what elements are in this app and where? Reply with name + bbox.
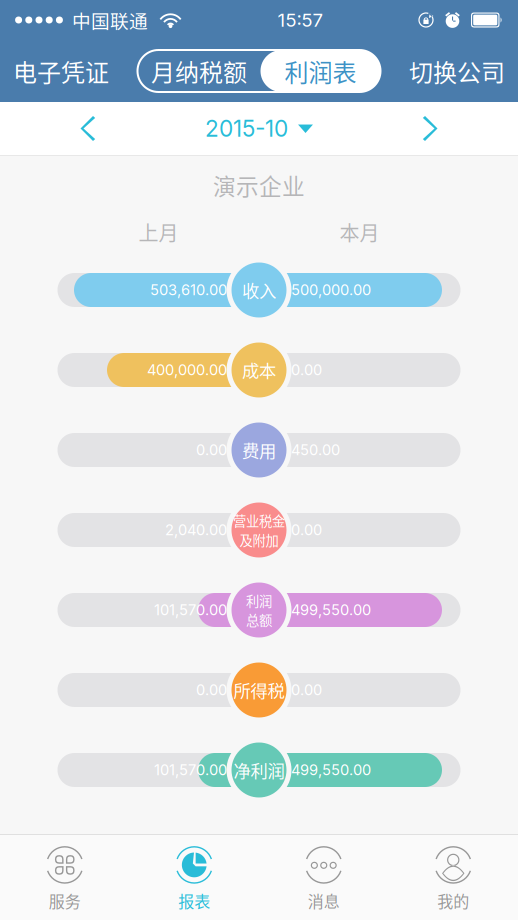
staticText: 营业税金 [233,511,285,530]
button[interactable]: 报表 [129,835,259,920]
staticText: 服务 [49,889,81,912]
staticText: 收入 [242,277,276,303]
button[interactable]: Previous month [50,102,124,155]
staticText: 499,550.00 [291,601,371,619]
staticText: 所得税 [233,677,284,703]
staticText: 及附加 [239,530,278,549]
staticText: 上月 [138,217,178,246]
staticText: 0.00 [196,441,227,459]
staticText: 400,000.00 [147,361,227,379]
staticText: 利润 [246,591,272,610]
staticText: 15:57 [277,9,323,31]
staticText: 0.00 [291,361,322,379]
staticText: 503,610.00 [150,281,227,299]
staticText: 0.00 [291,681,322,699]
staticText: 消息 [308,889,340,912]
staticText: 切换公司 [409,54,505,88]
staticText: 101,570.00 [154,761,227,779]
staticText: 101,570.00 [154,601,227,619]
staticText: 2,040.00 [165,521,227,539]
staticText: 500,000.00 [291,281,371,299]
staticText: 499,550.00 [291,761,371,779]
staticText: 演示企业 [213,169,305,201]
button[interactable]: 服务 [0,835,129,920]
button[interactable]: 消息 [259,835,388,920]
button[interactable]: 2015-10 [205,102,313,155]
staticText: 电子凭证 [13,54,109,88]
staticText: 月纳税额 [151,54,247,88]
staticText: 报表 [178,889,210,912]
button[interactable]: 利润表 [260,50,380,92]
staticText: 本月 [339,217,379,246]
staticText: 成本 [242,357,276,383]
staticText: 450.00 [291,441,340,459]
staticText: 总额 [246,610,272,629]
staticText: 0.00 [196,681,227,699]
button[interactable]: 切换公司 [398,40,516,102]
staticText: 2015-10 [205,115,288,142]
staticText: 中国联通 [72,6,148,33]
staticText: 利润表 [284,54,356,88]
button[interactable]: 电子凭证 [2,40,120,102]
button[interactable]: 我的 [388,835,518,920]
button[interactable]: 月纳税额 [137,50,260,92]
staticText: 0.00 [291,521,322,539]
staticText: 费用 [242,437,276,463]
staticText: 我的 [437,889,469,912]
staticText: 净利润 [233,757,284,783]
button[interactable]: Next month [393,102,467,155]
